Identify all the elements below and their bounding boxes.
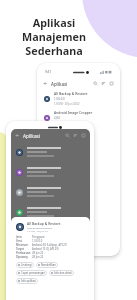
staticText: Aplikasi Manajemen Sederhana — [22, 15, 86, 58]
staticText: Lindungi — [21, 263, 32, 267]
button[interactable]: Sort — [73, 133, 78, 138]
staticText: 1.0.0.0.0 — [54, 97, 65, 101]
staticText: 28 Jun 22 — [32, 251, 44, 255]
button[interactable]: Nonaktifkan — [36, 262, 58, 268]
button[interactable]: Lindungi — [16, 262, 34, 268]
button[interactable] — [11, 162, 90, 182]
button[interactable]: Layout — [81, 133, 86, 138]
button[interactable]: Copot pemasangan — [16, 270, 47, 276]
staticText: Minimum — [16, 243, 28, 247]
button[interactable]: Layout — [109, 81, 114, 86]
staticText: Android Image Cropper — [54, 110, 93, 115]
button[interactable]: Search — [65, 133, 70, 138]
staticText: Aplikasi — [23, 133, 41, 139]
staticText: 1.8 MB · 28 Jun 2022 — [54, 102, 80, 106]
staticText: Jenis — [16, 235, 22, 239]
staticText: Pengguna — [32, 235, 45, 239]
staticText: Pembaruan — [16, 251, 31, 255]
staticText: 2.8.0 — [54, 116, 61, 120]
button[interactable]: Search — [93, 81, 98, 86]
button[interactable] — [11, 202, 90, 222]
staticText: 9:41 — [45, 70, 51, 74]
staticText: Versi — [16, 239, 23, 243]
staticText: Nonaktifkan — [41, 263, 56, 267]
staticText: Android 4.0 (Lollipop, API 21) — [32, 243, 68, 247]
staticText: Info aplikasi — [21, 279, 36, 283]
staticText: com.ahranta.android — [27, 226, 52, 229]
button[interactable]: Info dan detail — [49, 270, 74, 276]
staticText: Aplikasi — [51, 81, 68, 87]
staticText: 1.8 MB · 28 Jun 22 — [27, 229, 48, 232]
staticText: Copot pemasangan — [21, 271, 45, 275]
staticText: 28 Jun 22 — [32, 255, 44, 259]
staticText: All Backup & Restore — [54, 91, 88, 96]
staticText: Info dan detail — [54, 271, 72, 275]
staticText: Android 10 (Q, API 29) — [32, 247, 59, 251]
staticText: All Backup & Restore — [27, 221, 61, 226]
button[interactable] — [11, 182, 90, 202]
staticText: Dipasang — [16, 255, 28, 259]
button[interactable]: Back — [43, 81, 48, 86]
button[interactable]: Info aplikasi — [16, 278, 38, 284]
button[interactable]: Back — [11, 129, 90, 142]
button[interactable] — [11, 142, 90, 162]
button[interactable]: Android Image Cropper — [39, 108, 118, 127]
button[interactable]: Sort — [101, 81, 106, 86]
staticText: 1.0.0.0.0 — [32, 239, 43, 243]
button[interactable]: Back — [15, 133, 20, 138]
button[interactable]: All Backup & Restore — [39, 89, 118, 108]
staticText: Target — [16, 247, 24, 251]
button[interactable]: Back — [39, 78, 118, 89]
